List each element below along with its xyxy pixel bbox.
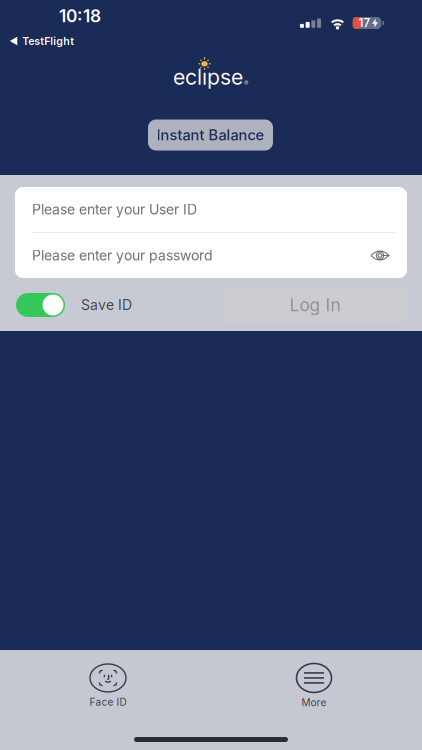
button[interactable]: Face ID [89,664,126,708]
staticText: ® [244,79,248,87]
button[interactable]: Save ID [16,293,65,317]
button[interactable]: Instant Balance [148,119,273,150]
staticText: Save ID [81,296,132,313]
button[interactable]: Back to TestFlight [10,34,74,47]
staticText: Log In [289,294,340,315]
button[interactable]: Show password [363,233,407,278]
staticText: Face ID [89,696,126,708]
staticText: More [301,696,326,709]
staticText: 10:18 [59,5,101,26]
staticText: Instant Balance [156,126,264,144]
staticText: eclıpse [173,64,243,90]
staticText: TestFlight [22,34,74,47]
button[interactable]: Log In [223,287,407,323]
staticText: Please enter your password [32,247,213,264]
button[interactable]: Please enter your password [15,233,363,278]
staticText: 17 [359,16,371,30]
button[interactable]: Please enter your User ID [15,187,407,232]
button[interactable]: More [296,663,331,709]
staticText: Please enter your User ID [32,201,197,218]
